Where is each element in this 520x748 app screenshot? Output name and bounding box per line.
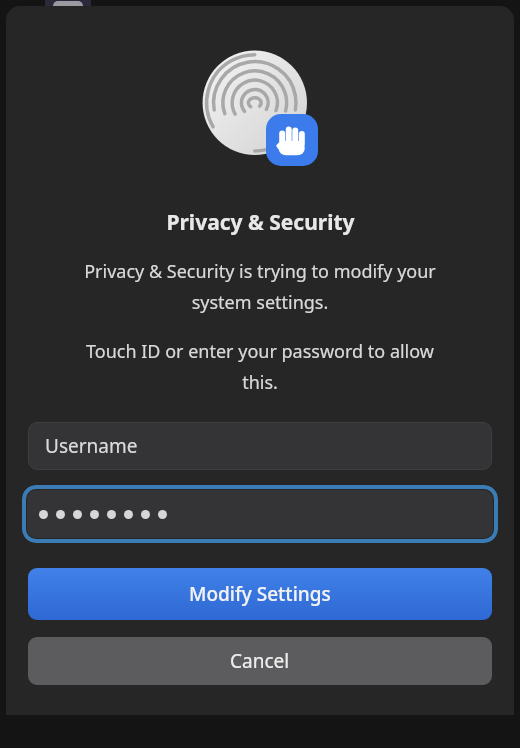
staticText: Cancel <box>230 648 290 674</box>
staticText: Touch ID or enter your password to allow… <box>72 339 448 394</box>
button[interactable]: Modify Settings <box>28 568 492 620</box>
staticText: Privacy & Security <box>166 208 355 237</box>
other: Touch ID <box>202 50 318 166</box>
staticText: Privacy & Security is trying to modify y… <box>62 259 458 314</box>
staticText: Modify Settings <box>189 581 331 607</box>
button[interactable]: Username <box>28 422 492 470</box>
button[interactable]: Cancel <box>28 637 492 685</box>
staticText: Username <box>45 433 138 459</box>
button[interactable] <box>27 490 493 538</box>
